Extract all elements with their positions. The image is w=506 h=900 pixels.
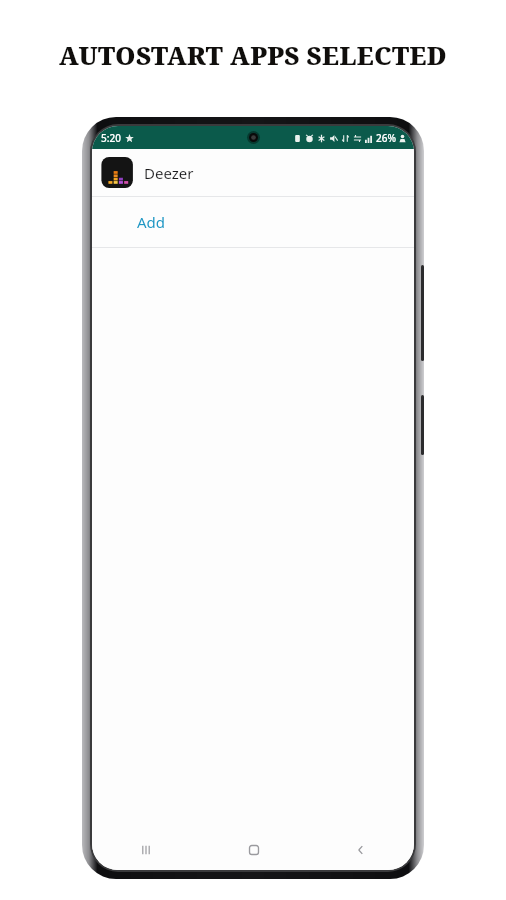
button[interactable]: Deezer <box>92 149 414 196</box>
button[interactable]: Back <box>307 830 414 870</box>
staticText: Deezer <box>144 163 194 183</box>
staticText: 26% <box>376 131 396 145</box>
staticText: 5:20 <box>101 131 121 145</box>
staticText: Add <box>137 212 166 232</box>
staticText: AUTOSTART APPS SELECTED <box>0 38 506 72</box>
button[interactable]: Home <box>200 830 307 870</box>
button[interactable]: Add <box>92 197 414 247</box>
button[interactable]: Recent apps <box>92 830 200 870</box>
